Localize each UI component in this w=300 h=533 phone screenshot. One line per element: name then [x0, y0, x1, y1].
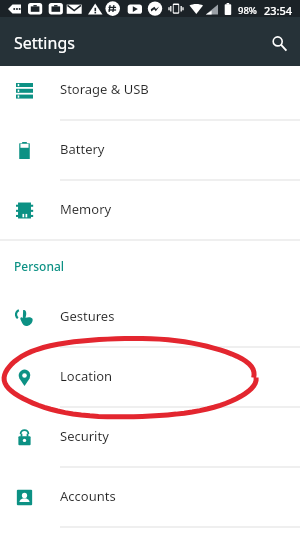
button[interactable]: Gestures	[0, 287, 300, 347]
staticText: Location	[60, 367, 113, 385]
staticText: Settings	[14, 32, 75, 54]
button[interactable]: Memory	[0, 180, 300, 240]
button[interactable]: Accounts	[0, 467, 300, 527]
button[interactable]: Storage & USB	[0, 60, 300, 120]
staticText: Security	[60, 427, 109, 445]
staticText: Personal	[14, 258, 65, 274]
staticText: Memory	[60, 200, 112, 218]
button[interactable]: Battery	[0, 120, 300, 180]
button[interactable]: Location	[0, 347, 300, 407]
staticText: Gestures	[60, 307, 115, 325]
staticText: 23:54	[264, 3, 293, 18]
staticText: Battery	[60, 140, 105, 158]
staticText: Storage & USB	[60, 80, 149, 98]
staticText: 98%	[238, 4, 257, 17]
button[interactable]: Search	[256, 20, 300, 64]
button[interactable]: Security	[0, 407, 300, 467]
staticText: Accounts	[60, 487, 116, 505]
